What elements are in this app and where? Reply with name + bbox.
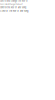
staticText: Control and change the key of — [0, 0, 28, 2]
staticText: Control the key of any song — [0, 6, 26, 9]
staticText: Control the key of any song — [0, 10, 28, 12]
staticText: Control and change the key of — [0, 3, 23, 5]
